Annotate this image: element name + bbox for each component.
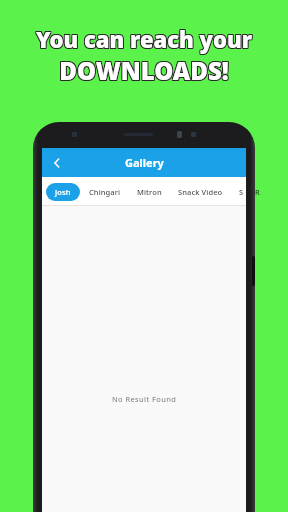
staticText: DOWNLOADS! (58, 54, 228, 87)
staticText: DOWNLOADS! (60, 53, 230, 86)
staticText: DOWNLOADS! (59, 54, 229, 87)
staticText: You can reach your (36, 23, 252, 53)
staticText: You can reach your (35, 24, 251, 54)
button[interactable]: Chingari (82, 183, 128, 201)
staticText: Mitron (137, 187, 162, 197)
button[interactable]: Back (45, 151, 69, 175)
staticText: DOWNLOADS! (58, 55, 228, 88)
staticText: DOWNLOADS! (60, 55, 230, 88)
staticText: DOWNLOADS! (59, 55, 229, 88)
staticText: You can reach your (37, 23, 253, 53)
staticText: DOWNLOADS! (58, 53, 228, 86)
staticText: DOWNLOADS! (60, 54, 230, 87)
staticText: You can reach your (36, 24, 252, 54)
staticText: Gallery (125, 155, 164, 170)
staticText: You can reach your (37, 25, 253, 55)
staticText: You can reach your (35, 23, 251, 53)
staticText: No Result Found (112, 394, 177, 404)
staticText: Josh (55, 187, 71, 197)
button[interactable]: Josh (46, 183, 80, 201)
staticText: You can reach your (36, 25, 252, 55)
staticText: You can reach your (37, 24, 253, 54)
button[interactable]: Mitron (130, 183, 169, 201)
staticText: DOWNLOADS! (59, 53, 229, 86)
button[interactable]: Sharechat (232, 183, 246, 201)
staticText: Snack Video (178, 187, 223, 197)
staticText: Chingari (89, 187, 121, 197)
staticText: You can reach your (35, 25, 251, 55)
button[interactable]: Snack Video (171, 183, 230, 201)
button[interactable]: Power (252, 256, 255, 286)
